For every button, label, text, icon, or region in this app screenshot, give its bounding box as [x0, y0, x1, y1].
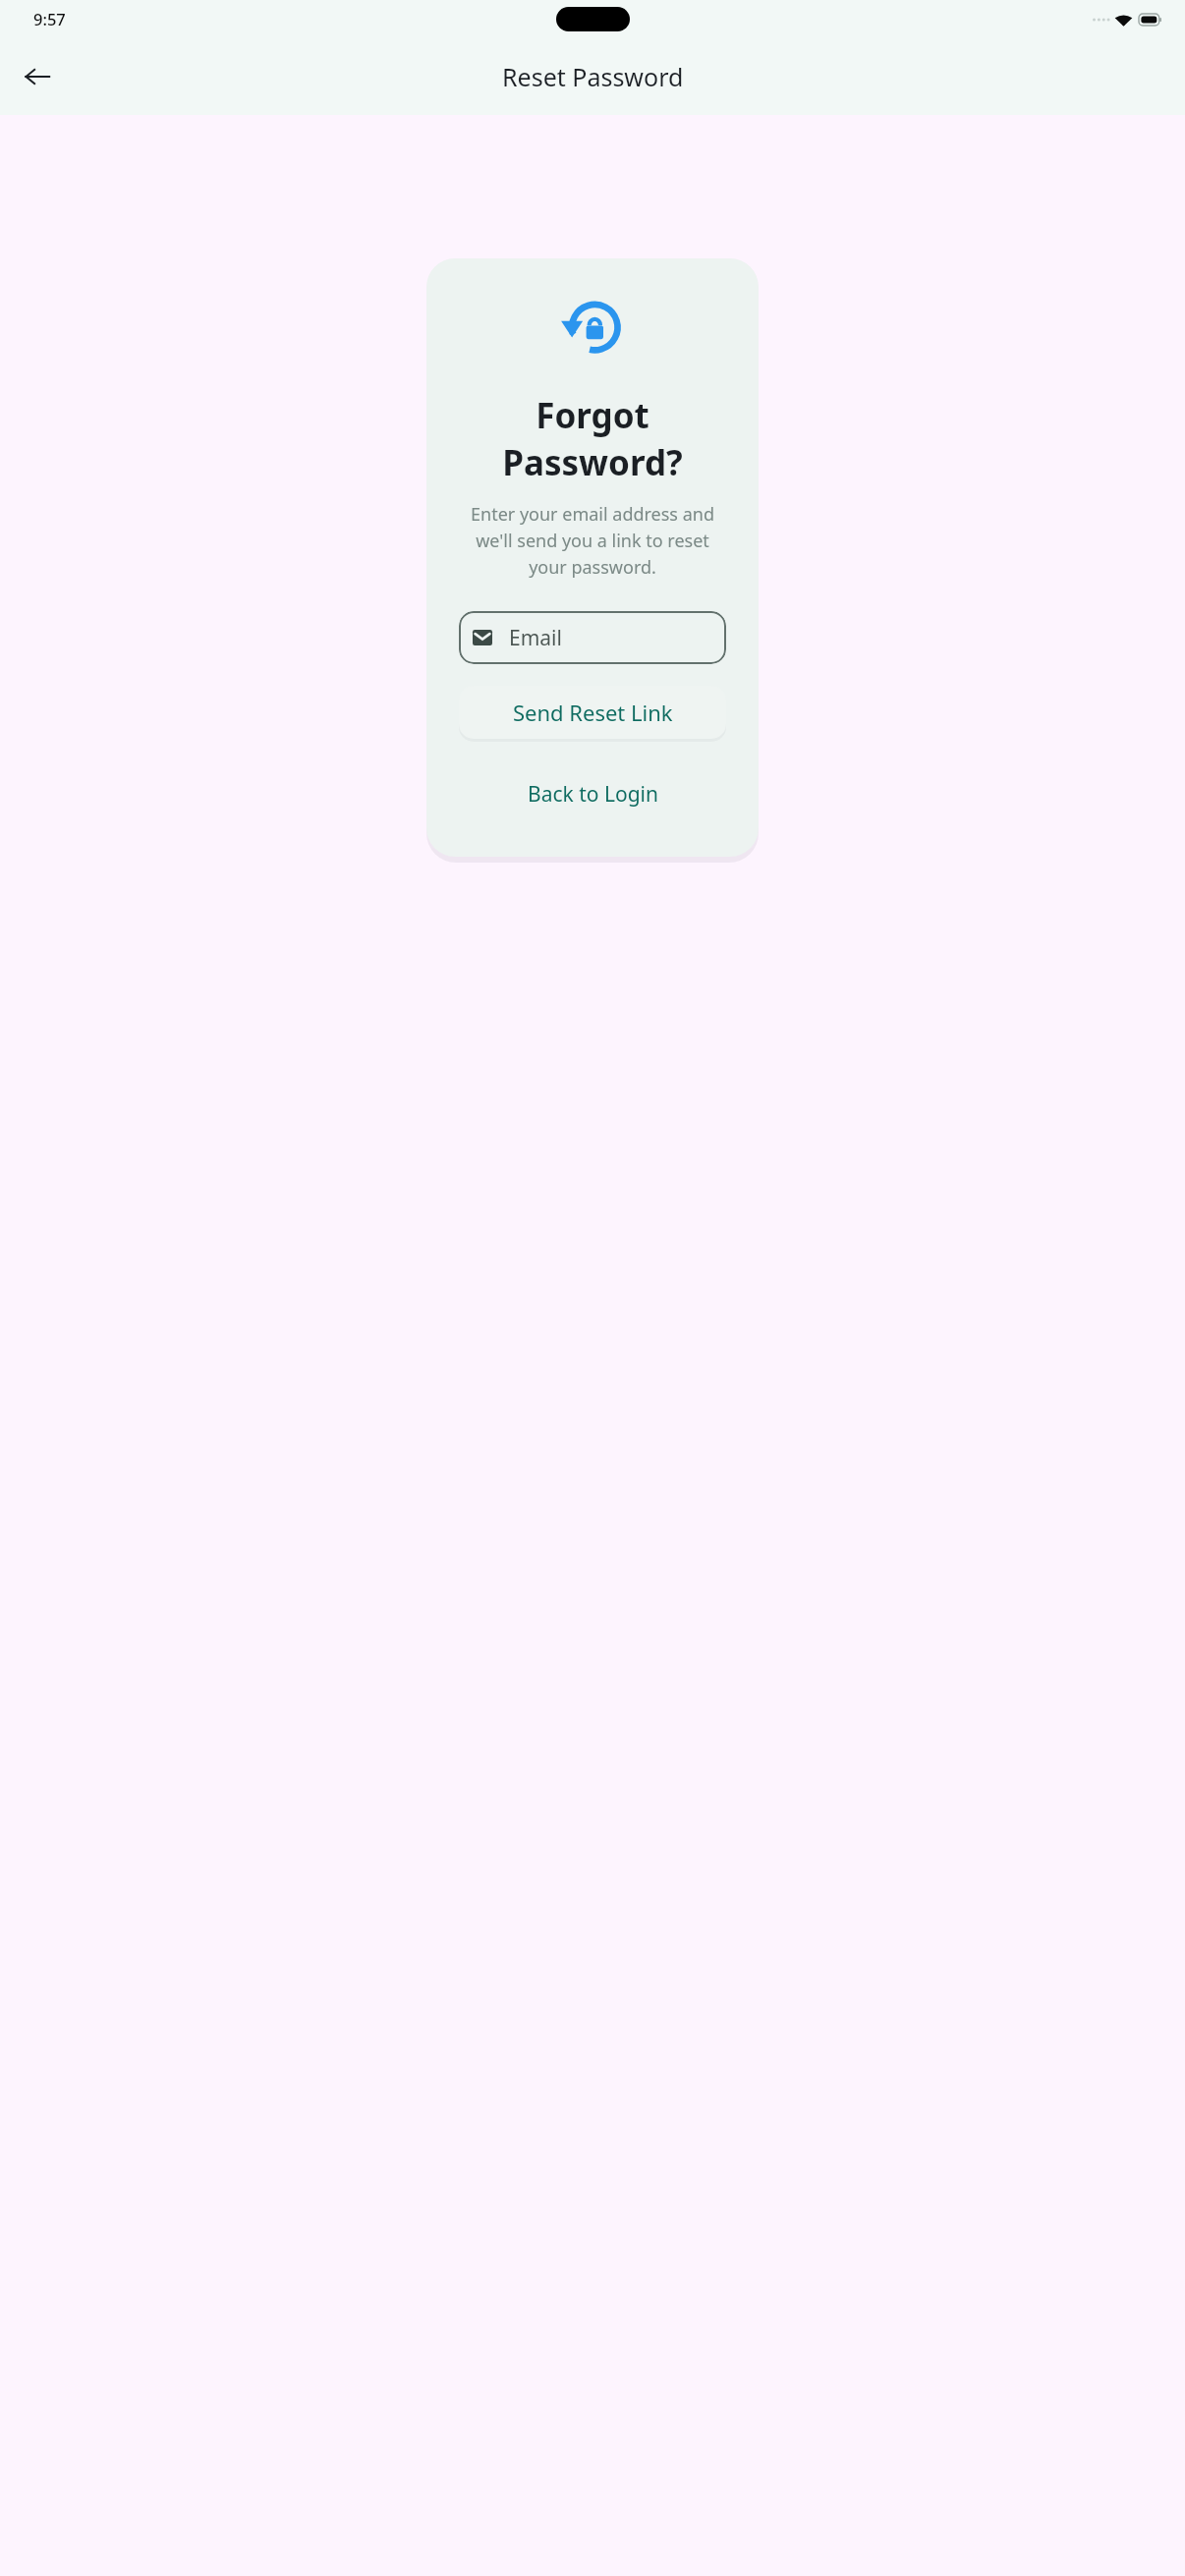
- staticText: Back to Login: [528, 780, 658, 809]
- button[interactable]: Send Reset Link: [459, 686, 726, 739]
- staticText: Reset Password: [502, 60, 684, 93]
- staticText: 9:57: [33, 8, 66, 29]
- staticText: Enter your email address and we'll send …: [459, 502, 726, 579]
- staticText: Email: [509, 624, 562, 652]
- button[interactable]: Back to Login: [459, 770, 726, 817]
- button[interactable]: Back: [12, 51, 63, 102]
- staticText: Forgot Password?: [459, 392, 726, 486]
- button[interactable]: Email: [459, 611, 726, 664]
- staticText: Send Reset Link: [513, 698, 673, 727]
